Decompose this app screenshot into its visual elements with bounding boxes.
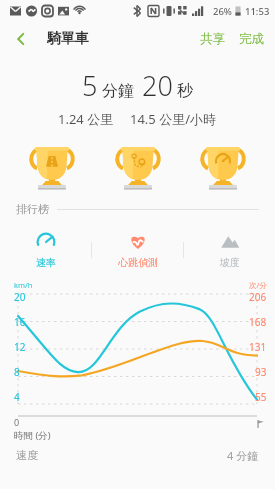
button[interactable]: Achievement badge (197, 142, 249, 192)
staticText: 速度 (16, 448, 38, 462)
staticText: 5 (82, 67, 98, 104)
staticText: 分鐘 (102, 81, 134, 101)
staticText: km/h (14, 280, 33, 290)
staticText: 12 (14, 340, 26, 354)
staticText: 0 (14, 416, 20, 428)
staticText: 4 (14, 390, 20, 404)
staticText: 時間 (分) (14, 429, 51, 442)
staticText: 11:53 (245, 5, 270, 18)
staticText: 速率 (36, 256, 56, 269)
button[interactable]: Back (6, 24, 36, 54)
staticText: 坡度 (220, 256, 240, 269)
staticText: 20 (142, 67, 173, 104)
staticText: 20 (14, 290, 26, 304)
button[interactable]: Achievement badge (26, 142, 78, 192)
staticText: 共享 (200, 31, 225, 47)
staticText: 次/分 (249, 280, 267, 290)
button[interactable]: 心跳偵測 (92, 228, 183, 272)
staticText: 排行榜 (16, 202, 49, 216)
staticText: 1.24 公里 (58, 110, 114, 128)
staticText: 14.5 公里/小時 (130, 110, 217, 128)
staticText: 騎單車 (47, 30, 89, 48)
staticText: 8 (14, 365, 20, 379)
staticText: 4 分鐘 (227, 448, 259, 463)
button[interactable]: 坡度 (184, 228, 275, 272)
staticText: 55 (255, 390, 267, 404)
staticText: 93 (255, 365, 267, 379)
staticText: 心跳偵測 (118, 256, 158, 269)
staticText: 206 (249, 290, 267, 304)
button[interactable]: 速率 (0, 228, 91, 272)
staticText: 131 (249, 340, 267, 354)
staticText: 26% (213, 5, 232, 18)
button[interactable]: Achievement badge (112, 142, 164, 192)
staticText: 完成 (239, 31, 264, 47)
button[interactable]: 完成 (232, 25, 275, 53)
staticText: 16 (14, 315, 26, 329)
staticText: 168 (249, 315, 267, 329)
button[interactable]: 共享 (193, 25, 232, 53)
staticText: 秒 (177, 81, 193, 101)
